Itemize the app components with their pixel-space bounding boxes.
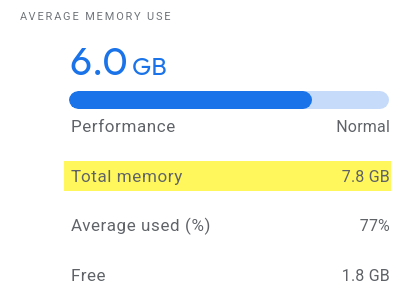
staticText: Average used (%) [71, 215, 212, 235]
staticText: Total memory [71, 166, 183, 186]
staticText: 6.0 [70, 36, 128, 85]
staticText: Normal [180, 116, 390, 136]
button[interactable]: Free [64, 260, 391, 290]
staticText: 77% [216, 215, 390, 235]
staticText: GB [132, 50, 167, 82]
staticText: AVERAGE MEMORY USE [20, 10, 173, 23]
staticText: Free [71, 265, 107, 285]
button[interactable]: Performance [64, 111, 391, 141]
staticText: 7.8 GB [187, 166, 390, 186]
button[interactable]: Average used (%) [64, 210, 391, 240]
staticText: Performance [71, 116, 176, 136]
staticText: 1.8 GB [111, 265, 390, 285]
button[interactable]: Total memory [64, 161, 391, 191]
